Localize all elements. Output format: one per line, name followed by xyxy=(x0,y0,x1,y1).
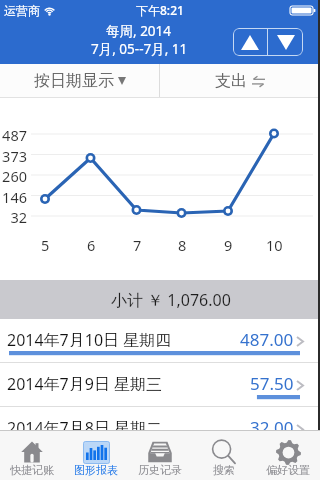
staticText: 2014年7月9日 星期三 xyxy=(7,373,163,391)
staticText: 搜索 xyxy=(213,463,235,477)
staticText: 10 xyxy=(266,235,283,253)
staticText: 快捷记账 xyxy=(10,463,54,477)
staticText: 260 xyxy=(2,166,27,184)
staticText: 7月, 05--7月, 11 xyxy=(91,40,188,58)
staticText: 146 xyxy=(2,187,27,205)
staticText: 历史记录 xyxy=(138,463,182,477)
button[interactable]: 图形报表 xyxy=(64,430,128,480)
staticText: 小计 ￥ 1,076.00 xyxy=(111,289,231,311)
other: Settings xyxy=(276,440,301,465)
staticText: 7 xyxy=(133,235,142,253)
staticText: 图形报表 xyxy=(74,463,118,477)
staticText: 2014年7月8日 星期二 xyxy=(7,417,163,435)
button[interactable]: 2014年7月10日 星期四 xyxy=(0,319,320,363)
button[interactable]: 支出 xyxy=(160,64,320,98)
button[interactable]: 2014年7月8日 星期二 xyxy=(0,407,320,451)
staticText: 32 xyxy=(10,207,27,225)
button[interactable]: Settings xyxy=(256,430,320,480)
staticText: 运营商 xyxy=(4,3,40,18)
other: Search xyxy=(212,440,236,464)
staticText: 下午8:21 xyxy=(136,2,184,18)
button[interactable]: Previous period xyxy=(233,28,267,56)
button[interactable]: 快捷记账 xyxy=(0,430,64,480)
staticText: 偏好设置 xyxy=(266,463,310,477)
staticText: 32.00 xyxy=(250,416,294,435)
button[interactable]: Next period xyxy=(268,28,303,56)
staticText: 9 xyxy=(224,235,233,253)
staticText: 373 xyxy=(2,146,27,164)
button[interactable]: Search xyxy=(192,430,256,480)
staticText: 按日期显示 xyxy=(34,71,114,91)
staticText: 487 xyxy=(2,125,27,143)
button[interactable]: 按日期显示 xyxy=(0,64,159,98)
button[interactable]: 2014年7月9日 星期三 xyxy=(0,363,320,407)
staticText: 5 xyxy=(41,235,50,253)
staticText: 每周, 2014 xyxy=(106,22,172,40)
button[interactable]: 历史记录 xyxy=(128,430,192,480)
staticText: 6 xyxy=(87,235,96,253)
staticText: 8 xyxy=(178,235,187,253)
staticText: 支出 xyxy=(215,71,247,91)
staticText: 487.00 xyxy=(240,328,294,347)
staticText: 2014年7月10日 星期四 xyxy=(7,329,172,347)
staticText: 57.50 xyxy=(250,372,294,391)
